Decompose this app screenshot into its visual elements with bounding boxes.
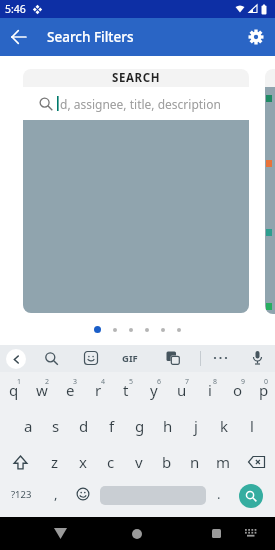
staticText: o [233,380,243,400]
staticText: ?123 [11,488,32,501]
button[interactable]: v [125,444,153,480]
staticText: m [216,452,231,472]
button[interactable]: x [69,444,97,480]
button[interactable]: a [14,408,42,444]
button[interactable]: p [252,372,275,408]
staticText: 6 [157,377,162,387]
button[interactable] [44,351,59,366]
button[interactable]: d, assignee, title, description [23,87,249,120]
staticText: , [54,485,58,503]
staticText: e [66,380,75,400]
staticText: p [259,380,269,400]
staticText: GIF [122,352,138,365]
button[interactable]: r [84,372,112,408]
staticText: n [190,452,200,472]
button[interactable] [0,18,38,56]
button[interactable]: o [224,372,252,408]
staticText: d, assignee, title, description [60,96,221,112]
button[interactable]: k [210,408,238,444]
staticText: x [79,452,87,472]
button[interactable]: h [154,408,182,444]
staticText: c [107,452,115,472]
button[interactable]: m [209,444,237,480]
staticText: 4 [101,377,106,387]
button[interactable]: n [181,444,209,480]
staticText: s [52,416,60,436]
staticText: y [150,380,158,400]
staticText: SEARCH [112,70,161,86]
staticText: j [194,416,198,436]
staticText: 1 [17,377,22,387]
button[interactable]: e [56,372,84,408]
button[interactable] [84,351,98,365]
button[interactable]: , [48,476,64,512]
button[interactable] [76,487,90,501]
staticText: r [95,380,102,400]
staticText: 3 [73,377,78,387]
button[interactable]: l [238,408,266,444]
staticText: i [208,380,212,400]
staticText: b [162,452,172,472]
button[interactable] [6,349,26,369]
staticText: g [135,416,145,436]
button[interactable] [100,486,206,505]
button[interactable]: d [70,408,98,444]
button[interactable]: GIF [122,351,138,366]
button[interactable]: ?123 [6,476,36,512]
staticText: l [250,416,254,436]
staticText: 5:46 [5,2,26,16]
staticText: 2 [45,377,50,387]
button[interactable] [239,484,263,508]
staticText: Search Filters [47,28,134,46]
button[interactable]: f [98,408,126,444]
staticText: t [123,380,129,400]
button[interactable]: t [112,372,140,408]
staticText: 8 [213,377,218,387]
staticText: . [217,485,221,503]
staticText: f [109,416,115,436]
button[interactable]: z [41,444,69,480]
button[interactable] [0,444,41,480]
staticText: 0 [264,377,269,387]
button[interactable]: j [182,408,210,444]
staticText: z [51,452,59,472]
button[interactable]: q [0,372,28,408]
staticText: d [79,416,89,436]
button[interactable] [166,351,180,365]
button[interactable] [241,517,261,550]
staticText: a [24,416,33,436]
button[interactable]: y [140,372,168,408]
button[interactable]: . [212,476,226,512]
button[interactable]: i [196,372,224,408]
button[interactable]: b [153,444,181,480]
button[interactable]: s [42,408,70,444]
button[interactable] [237,18,275,56]
staticText: 7 [185,377,190,387]
button[interactable]: g [126,408,154,444]
staticText: q [9,380,19,400]
staticText: 5 [129,377,134,387]
button[interactable] [202,517,230,550]
button[interactable] [46,517,74,550]
staticText: k [220,416,229,436]
staticText: v [135,452,143,472]
staticText: w [36,380,48,400]
button[interactable] [251,350,264,367]
staticText: 9 [241,377,246,387]
button[interactable] [123,517,151,550]
staticText: h [163,416,173,436]
button[interactable]: c [97,444,125,480]
button[interactable] [237,444,275,480]
button[interactable] [212,355,230,361]
button[interactable]: w [28,372,56,408]
staticText: u [177,380,187,400]
button[interactable]: u [168,372,196,408]
